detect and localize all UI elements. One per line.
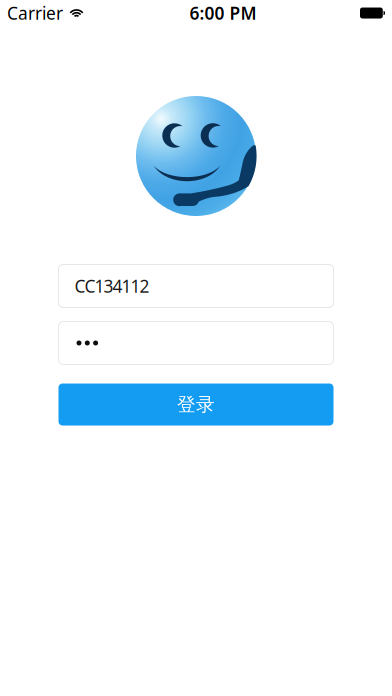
staticText: 6:00 PM xyxy=(189,1,256,24)
button[interactable]: 登录 xyxy=(58,383,333,425)
button[interactable] xyxy=(58,321,333,364)
staticText: 登录 xyxy=(177,393,215,416)
staticText: CC134112 xyxy=(74,274,149,297)
staticText: Carrier xyxy=(7,1,63,24)
button[interactable]: CC134112 xyxy=(58,264,333,307)
